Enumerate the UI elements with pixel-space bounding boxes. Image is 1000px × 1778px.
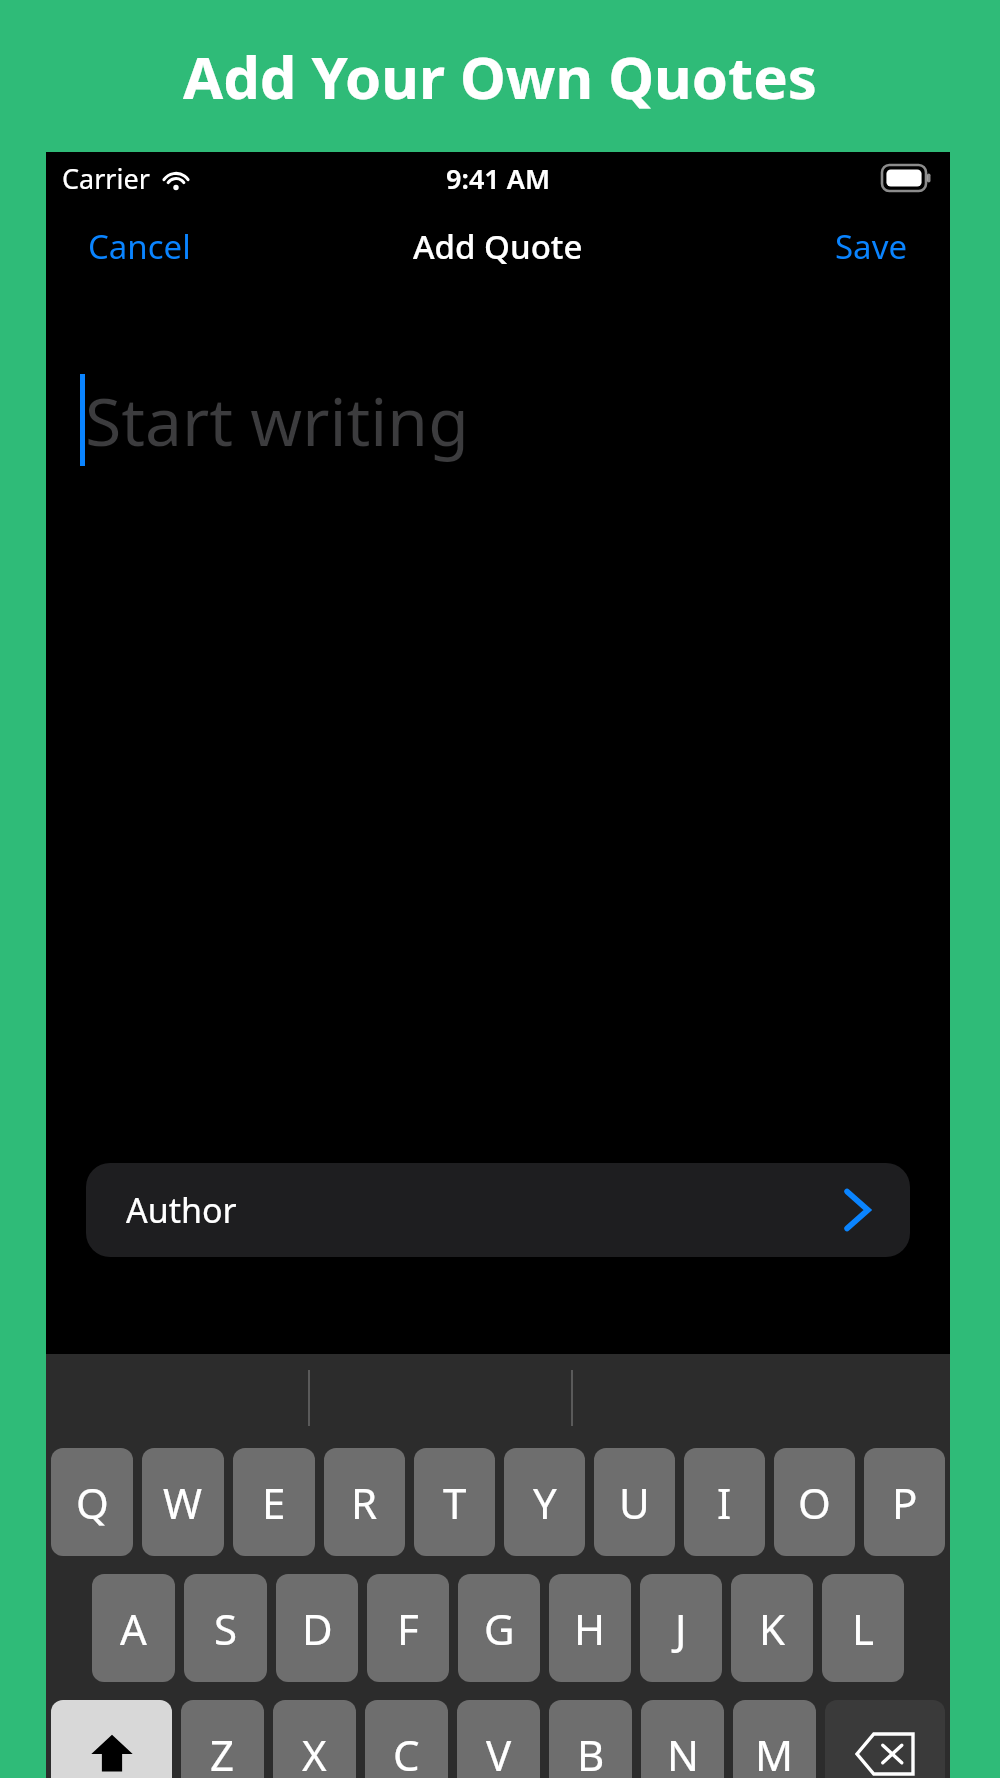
button[interactable]: Author (86, 1163, 910, 1257)
staticText: I (717, 1474, 732, 1531)
staticText: P (892, 1474, 918, 1531)
staticText: Save (835, 224, 908, 269)
staticText: D (302, 1600, 333, 1657)
button[interactable]: K (731, 1574, 813, 1682)
button[interactable]: L (822, 1574, 904, 1682)
button[interactable]: V (457, 1700, 540, 1778)
button[interactable]: Cancel (46, 210, 233, 283)
button[interactable]: P (864, 1448, 945, 1556)
button[interactable]: F (367, 1574, 449, 1682)
button[interactable]: I (684, 1448, 765, 1556)
button[interactable]: D (276, 1574, 358, 1682)
button[interactable]: O (774, 1448, 855, 1556)
button[interactable]: Q (51, 1448, 133, 1556)
button[interactable]: U (594, 1448, 675, 1556)
button[interactable]: M (733, 1700, 816, 1778)
staticText: 9:41 AM (446, 160, 551, 197)
button[interactable]: B (549, 1700, 632, 1778)
button[interactable]: J (640, 1574, 722, 1682)
other: Choose author (844, 1188, 870, 1232)
button[interactable]: Y (504, 1448, 585, 1556)
staticText: R (351, 1474, 378, 1531)
staticText: Carrier (62, 160, 150, 197)
staticText: L (852, 1600, 875, 1657)
staticText: Y (533, 1474, 557, 1531)
staticText: B (577, 1726, 605, 1778)
staticText: G (484, 1600, 515, 1657)
button[interactable]: A (92, 1574, 175, 1682)
staticText: F (397, 1600, 419, 1657)
staticText: K (759, 1600, 785, 1657)
staticText: Add Quote (413, 224, 583, 269)
button[interactable]: E (233, 1448, 315, 1556)
button[interactable]: Z (181, 1700, 264, 1778)
staticText: H (574, 1600, 606, 1657)
button[interactable]: H (549, 1574, 631, 1682)
staticText: Author (126, 1187, 237, 1233)
staticText: M (755, 1726, 794, 1778)
button[interactable]: R (324, 1448, 405, 1556)
staticText: X (302, 1726, 327, 1778)
staticText: Add Your Own Quotes (183, 37, 817, 116)
other: Shift (89, 1731, 135, 1777)
staticText: Q (76, 1474, 109, 1531)
button[interactable]: X (273, 1700, 356, 1778)
other: Backspace (857, 1734, 913, 1774)
staticText: V (486, 1726, 512, 1778)
staticText: N (667, 1726, 699, 1778)
staticText: U (619, 1474, 650, 1531)
staticText: C (393, 1726, 420, 1778)
button[interactable]: Backspace (825, 1700, 945, 1778)
staticText: J (675, 1600, 687, 1657)
staticText: Cancel (88, 224, 191, 269)
button[interactable]: G (458, 1574, 540, 1682)
button[interactable]: Start writing (46, 288, 950, 1163)
staticText: E (262, 1474, 286, 1531)
staticText: Z (210, 1726, 235, 1778)
staticText: O (798, 1474, 831, 1531)
button[interactable]: Save (793, 210, 950, 283)
button[interactable]: N (641, 1700, 724, 1778)
staticText: W (163, 1474, 203, 1531)
staticText: A (120, 1600, 147, 1657)
button[interactable]: S (184, 1574, 267, 1682)
button[interactable]: Shift (51, 1700, 172, 1778)
staticText: S (214, 1600, 238, 1657)
button[interactable]: W (142, 1448, 224, 1556)
button[interactable]: T (414, 1448, 495, 1556)
staticText: T (443, 1474, 467, 1531)
staticText: Start writing (85, 375, 469, 465)
button[interactable]: C (365, 1700, 448, 1778)
